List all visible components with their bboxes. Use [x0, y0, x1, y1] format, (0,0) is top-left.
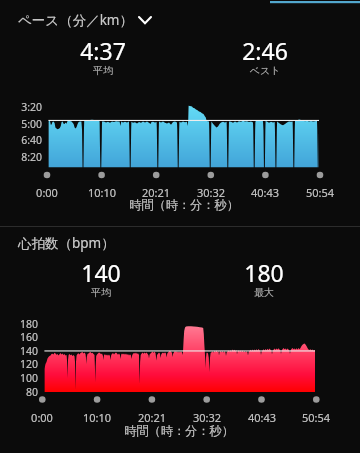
staticText: 4:37: [23, 35, 183, 66]
staticText: 140: [21, 257, 181, 288]
staticText: 120: [0, 357, 38, 371]
staticText: 3:20: [0, 100, 42, 114]
staticText: 100: [0, 371, 38, 385]
staticText: 5:00: [0, 117, 42, 131]
staticText: 50:54: [276, 410, 356, 425]
staticText: 0:00: [2, 410, 82, 425]
button[interactable]: Change metric: [131, 9, 157, 35]
staticText: 平均: [23, 64, 183, 77]
staticText: ベスト: [185, 64, 345, 77]
staticText: 最大: [184, 286, 344, 299]
button[interactable]: 2:46: [185, 35, 345, 66]
staticText: 20:21: [116, 185, 196, 200]
staticText: 10:10: [57, 410, 137, 425]
staticText: 80: [0, 385, 38, 399]
staticText: ペース（分／km）: [18, 11, 133, 29]
staticText: 180: [0, 317, 38, 331]
staticText: 0:00: [7, 185, 87, 200]
staticText: 心拍数（bpm）: [18, 234, 115, 252]
staticText: 8:20: [0, 150, 42, 164]
staticText: 6:40: [0, 133, 42, 147]
staticText: 10:10: [62, 185, 142, 200]
staticText: 50:54: [280, 185, 360, 200]
staticText: 160: [0, 330, 38, 344]
staticText: 平均: [21, 286, 181, 299]
staticText: 140: [0, 344, 38, 358]
button[interactable]: 180: [184, 257, 344, 288]
staticText: 40:43: [225, 185, 305, 200]
staticText: 時間（時：分：秒）: [84, 197, 284, 212]
staticText: 2:46: [185, 35, 345, 66]
staticText: 40:43: [222, 410, 302, 425]
button[interactable]: 4:37: [23, 35, 183, 66]
button[interactable]: 140: [21, 257, 181, 288]
staticText: 20:21: [112, 410, 192, 425]
staticText: 時間（時：分：秒）: [79, 423, 279, 438]
staticText: 180: [184, 257, 344, 288]
staticText: 30:32: [171, 185, 251, 200]
staticText: 30:32: [167, 410, 247, 425]
